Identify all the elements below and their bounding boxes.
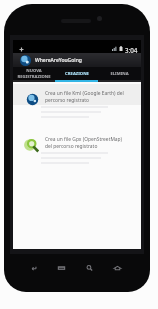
button[interactable]: Crea un file Gpx (OpenStreetMap) del per… (13, 136, 141, 163)
button[interactable]: Home (106, 256, 128, 280)
staticText: WhereAreYouGoing (35, 57, 82, 64)
staticText: ELIMINA (110, 71, 129, 77)
staticText: 3:04 (125, 46, 138, 54)
button[interactable]: Search (78, 256, 100, 280)
button[interactable]: CREAZIONE (55, 67, 98, 80)
staticText: Crea un file Kml (Google Earth) del perc… (45, 90, 124, 104)
button[interactable]: Recent apps (50, 256, 72, 280)
staticText: Crea un file Gpx (OpenStreetMap) del per… (45, 136, 123, 150)
staticText: CREAZIONE (65, 71, 89, 77)
button[interactable]: Back (22, 256, 44, 280)
button[interactable]: WhereAreYouGoing (13, 53, 141, 67)
staticText: NUOVA REGISTRAZIONE (17, 68, 51, 79)
button[interactable]: ELIMINA (98, 67, 141, 80)
button[interactable]: Crea un file Kml (Google Earth) del perc… (13, 90, 141, 117)
button[interactable]: NUOVA REGISTRAZIONE (13, 67, 55, 80)
